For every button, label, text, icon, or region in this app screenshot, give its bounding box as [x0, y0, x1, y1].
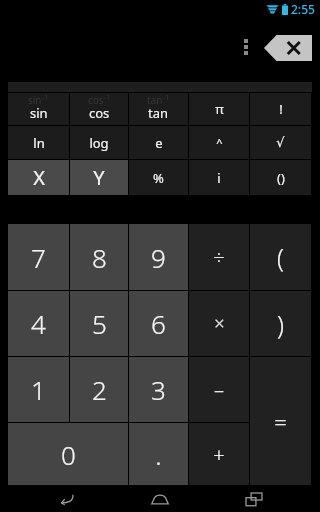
staticText: 6: [151, 306, 166, 341]
button[interactable]: 3: [129, 357, 188, 422]
button[interactable]: Back: [38, 486, 94, 512]
staticText: 2: [92, 372, 107, 407]
button[interactable]: tan: [129, 93, 188, 125]
button[interactable]: +: [189, 423, 249, 485]
staticText: √: [276, 135, 285, 150]
button[interactable]: Y: [70, 160, 128, 195]
button[interactable]: π: [189, 93, 249, 125]
button[interactable]: Home: [132, 486, 188, 512]
button[interactable]: 2: [70, 357, 128, 422]
button[interactable]: –: [189, 357, 249, 422]
button[interactable]: 0: [8, 423, 128, 485]
button[interactable]: ×: [189, 291, 249, 356]
button[interactable]: X: [8, 160, 69, 195]
staticText: ÷: [213, 244, 225, 271]
staticText: sin: [30, 104, 48, 122]
button[interactable]: More options: [236, 34, 256, 60]
staticText: –: [214, 376, 224, 403]
button[interactable]: Delete: [264, 35, 312, 61]
staticText: 4: [31, 306, 46, 341]
staticText: .: [155, 437, 162, 472]
staticText: X: [33, 164, 45, 191]
staticText: (: [277, 240, 284, 274]
button[interactable]: %: [129, 160, 188, 195]
staticText: tan: [147, 93, 163, 107]
button[interactable]: (: [250, 224, 311, 290]
staticText: +: [213, 441, 225, 468]
staticText: ln: [33, 134, 45, 152]
staticText: sin: [28, 93, 42, 107]
button[interactable]: .: [129, 423, 188, 485]
staticText: e: [155, 134, 163, 152]
button[interactable]: ^: [189, 126, 249, 159]
staticText: 2:55: [291, 1, 315, 17]
staticText: 7: [31, 240, 46, 275]
button[interactable]: 6: [129, 291, 188, 356]
button[interactable]: !: [250, 93, 311, 125]
staticText: ): [277, 307, 284, 341]
staticText: 8: [92, 240, 107, 275]
staticText: %: [153, 169, 164, 187]
button[interactable]: cos: [70, 93, 128, 125]
staticText: 3: [151, 372, 166, 407]
button[interactable]: 8: [70, 224, 128, 290]
staticText: -1: [42, 93, 49, 103]
staticText: tan: [148, 104, 169, 122]
staticText: cos: [88, 93, 104, 107]
button[interactable]: ÷: [189, 224, 249, 290]
staticText: ×: [214, 311, 225, 336]
button[interactable]: sin: [8, 93, 69, 125]
button[interactable]: ln: [8, 126, 69, 159]
staticText: Y: [93, 164, 105, 191]
staticText: π: [215, 100, 224, 118]
staticText: ^: [216, 135, 223, 150]
staticText: 9: [151, 240, 166, 275]
button[interactable]: (): [250, 160, 311, 195]
button[interactable]: ): [250, 291, 311, 356]
staticText: (): [277, 169, 285, 187]
button[interactable]: i: [189, 160, 249, 195]
staticText: -1: [104, 93, 111, 103]
staticText: cos: [89, 104, 110, 122]
button[interactable]: √: [250, 126, 311, 159]
staticText: -1: [163, 93, 170, 103]
button[interactable]: 5: [70, 291, 128, 356]
staticText: 5: [92, 306, 107, 341]
staticText: log: [89, 134, 109, 152]
button[interactable]: 9: [129, 224, 188, 290]
button[interactable]: 4: [8, 291, 69, 356]
staticText: 1: [31, 372, 46, 407]
button[interactable]: 1: [8, 357, 69, 422]
staticText: !: [279, 100, 283, 118]
button[interactable]: log: [70, 126, 128, 159]
staticText: i: [217, 169, 221, 187]
staticText: =: [274, 406, 287, 436]
button[interactable]: e: [129, 126, 188, 159]
button[interactable]: Recent apps: [226, 486, 282, 512]
staticText: 0: [61, 437, 76, 472]
button[interactable]: =: [250, 357, 311, 485]
button[interactable]: 7: [8, 224, 69, 290]
